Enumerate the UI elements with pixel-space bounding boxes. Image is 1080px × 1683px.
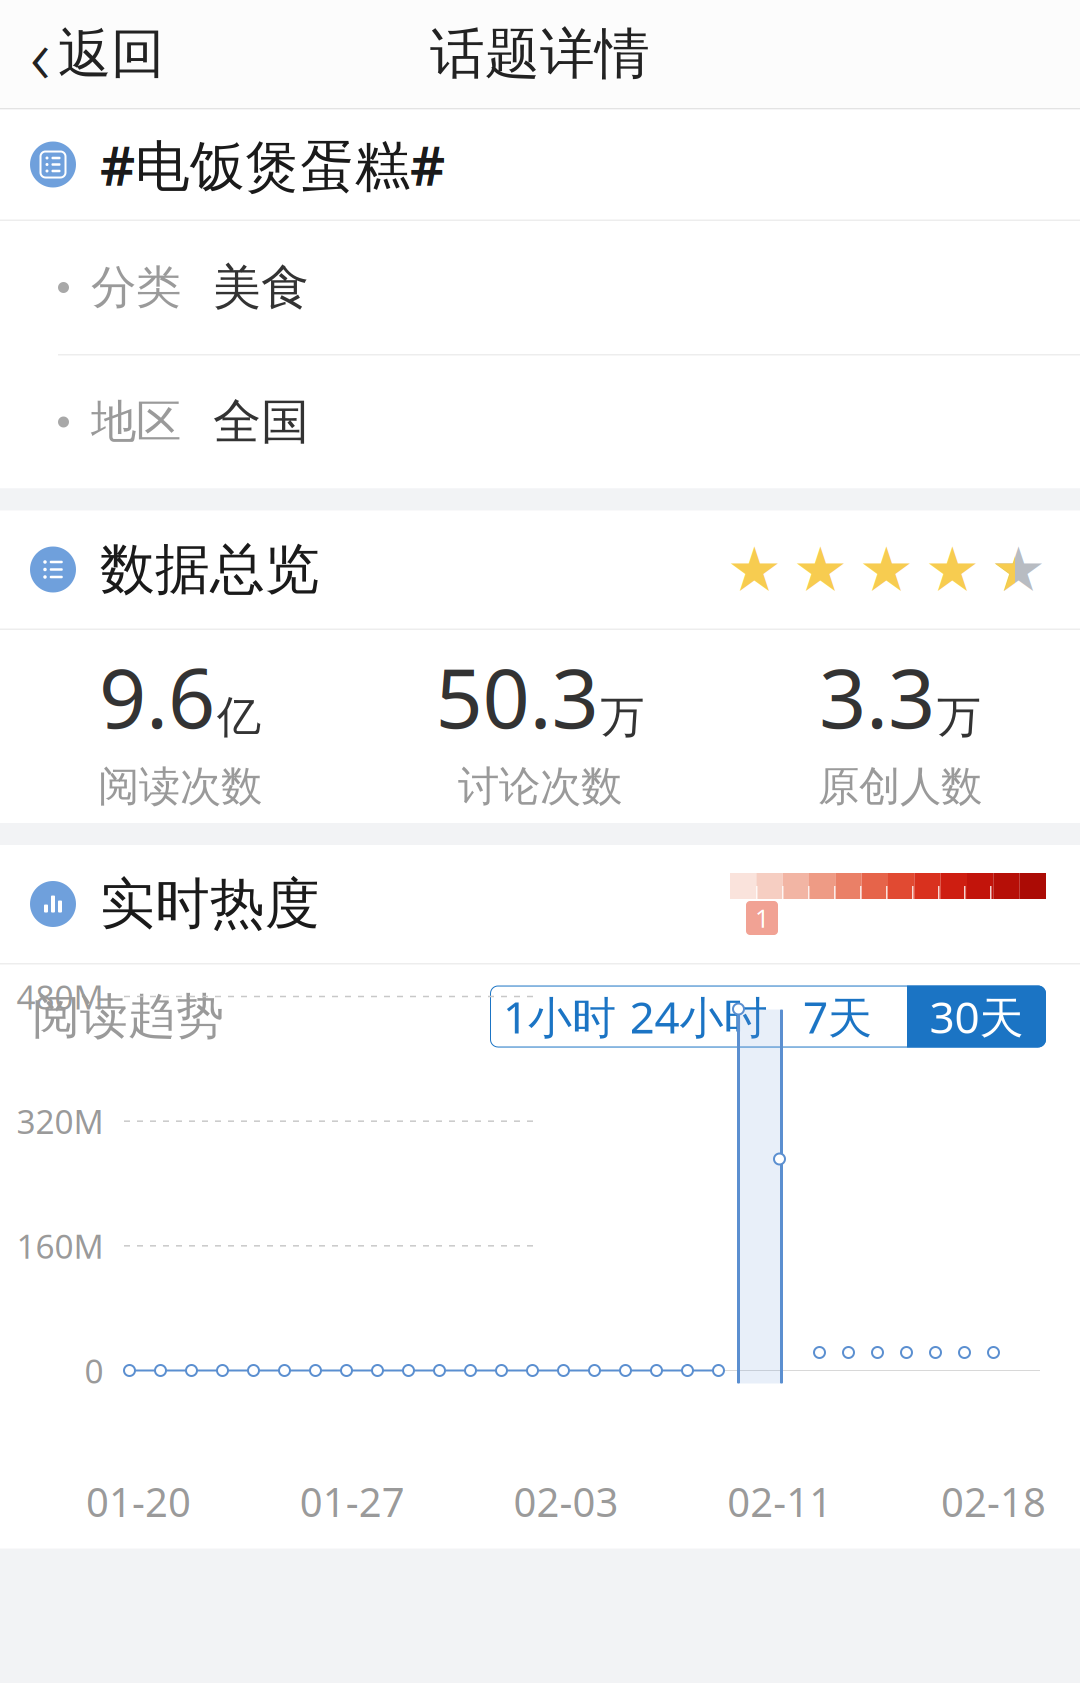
staticText: 万 xyxy=(937,690,981,744)
staticText: 阅读次数 xyxy=(98,761,262,812)
staticText: 话题详情 xyxy=(430,20,650,87)
staticText: ★ xyxy=(859,535,914,604)
staticText: 01-20 xyxy=(86,1475,191,1528)
staticText: 3.3 xyxy=(819,641,935,751)
staticText: 02-18 xyxy=(941,1475,1046,1528)
staticText: 160M xyxy=(16,1224,103,1268)
staticText: 万 xyxy=(600,690,644,744)
staticText: 7天 xyxy=(803,987,872,1046)
staticText: 数据总览 xyxy=(100,536,320,603)
staticText: 全国 xyxy=(213,392,309,451)
staticText: #电饭煲蛋糕# xyxy=(100,128,445,201)
staticText: 320M xyxy=(16,1099,103,1143)
staticText: 30天 xyxy=(929,987,1023,1046)
staticText: 美食 xyxy=(213,258,309,317)
staticText: ★ xyxy=(727,535,782,604)
staticText: ★ xyxy=(793,535,848,604)
staticText: ★ xyxy=(991,535,1046,604)
staticText: 480M xyxy=(16,974,103,1019)
button[interactable]: 1小时 xyxy=(490,985,629,1047)
staticText: ★ xyxy=(925,535,980,604)
staticText: 0 xyxy=(84,1348,103,1393)
staticText: 1小时 xyxy=(503,987,616,1046)
staticText: 讨论次数 xyxy=(458,761,622,812)
staticText: 原创人数 xyxy=(818,761,982,812)
button[interactable]: 返回 xyxy=(0,0,164,121)
button[interactable]: 24小时 xyxy=(629,985,768,1047)
staticText: 9.6 xyxy=(99,641,215,751)
staticText: 亿 xyxy=(217,690,261,744)
button[interactable]: 30天 xyxy=(907,985,1046,1047)
staticText: 阅读趋势 xyxy=(32,987,224,1046)
staticText: 50.3 xyxy=(435,641,598,751)
staticText: 02-11 xyxy=(727,1475,832,1528)
staticText: 01-27 xyxy=(300,1475,405,1528)
staticText: 24小时 xyxy=(629,987,767,1046)
staticText: 02-03 xyxy=(513,1475,618,1528)
staticText: 分类 xyxy=(91,260,181,315)
staticText: 实时热度 xyxy=(100,870,320,937)
staticText: 1 xyxy=(755,901,769,935)
staticText: ‹ xyxy=(30,3,50,105)
button[interactable]: 7天 xyxy=(768,985,907,1047)
staticText: ★ xyxy=(991,535,1046,604)
staticText: 返回 xyxy=(58,21,164,87)
staticText: 地区 xyxy=(91,394,181,450)
